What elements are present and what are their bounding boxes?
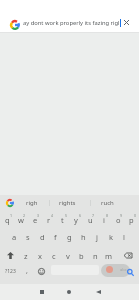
- button[interactable]: h: [76, 228, 90, 245]
- staticText: h: [81, 232, 86, 242]
- staticText: t: [61, 215, 64, 225]
- button[interactable]: x: [33, 247, 47, 264]
- button[interactable]: g: [62, 228, 76, 245]
- staticText: 4: [51, 213, 54, 218]
- button[interactable]: Backspace: [120, 247, 136, 264]
- button[interactable]: o: [111, 211, 125, 228]
- button[interactable]: i: [97, 211, 111, 228]
- staticText: g: [67, 232, 72, 242]
- button[interactable]: n: [88, 247, 102, 264]
- staticText: q: [5, 215, 10, 225]
- staticText: m: [105, 251, 113, 261]
- staticText: b: [79, 251, 84, 261]
- button[interactable]: y: [69, 211, 83, 228]
- button[interactable]: a: [7, 228, 21, 245]
- button[interactable]: rights: [49, 195, 85, 210]
- staticText: righ: [26, 199, 38, 207]
- button[interactable]: k: [104, 228, 118, 245]
- staticText: 5: [65, 213, 68, 218]
- staticText: ay dont work properly its fazing righ: [23, 19, 119, 27]
- button[interactable]: p: [124, 211, 138, 228]
- button[interactable]: j: [90, 228, 104, 245]
- button[interactable]: l: [117, 228, 131, 245]
- button[interactable]: Clear search: [119, 15, 133, 29]
- staticText: 2: [23, 213, 26, 218]
- staticText: d: [40, 232, 45, 242]
- staticText: c: [52, 251, 56, 261]
- staticText: f: [54, 232, 57, 242]
- button[interactable]: w: [14, 211, 28, 228]
- button[interactable]: q: [0, 211, 14, 228]
- button[interactable]: m: [102, 247, 116, 264]
- button[interactable]: e: [28, 211, 42, 228]
- staticText: i: [103, 215, 105, 225]
- button[interactable]: b: [74, 247, 88, 264]
- staticText: w: [18, 215, 24, 225]
- staticText: l: [123, 232, 125, 242]
- button[interactable]: u: [83, 211, 97, 228]
- staticText: rights: [59, 199, 76, 207]
- staticText: y: [74, 215, 78, 225]
- button[interactable]: ruch: [89, 195, 125, 210]
- staticText: v: [66, 251, 70, 261]
- button[interactable]: ?123: [2, 263, 18, 279]
- staticText: e: [33, 215, 38, 225]
- staticText: 7: [92, 213, 95, 218]
- button[interactable]: c: [47, 247, 61, 264]
- staticText: 8: [106, 213, 109, 218]
- staticText: z: [24, 251, 28, 261]
- button[interactable]: t: [55, 211, 69, 228]
- staticText: 9: [120, 213, 123, 218]
- button[interactable]: Search: [123, 266, 137, 278]
- staticText: ruch: [101, 199, 114, 207]
- staticText: j: [96, 232, 98, 242]
- button[interactable]: z: [19, 247, 33, 264]
- button[interactable]: Recent apps: [34, 284, 50, 300]
- staticText: n: [93, 251, 98, 261]
- staticText: 3: [37, 213, 40, 218]
- staticText: 6: [79, 213, 82, 218]
- button[interactable]: Shift: [3, 247, 18, 264]
- staticText: p: [129, 215, 134, 225]
- staticText: ,: [26, 266, 28, 276]
- button[interactable]: f: [48, 228, 62, 245]
- staticText: k: [109, 232, 114, 242]
- button[interactable]: ,: [21, 263, 33, 279]
- staticText: o: [116, 215, 121, 225]
- staticText: x: [38, 251, 42, 261]
- staticText: s: [26, 232, 30, 242]
- staticText: ?123: [5, 268, 16, 275]
- staticText: a: [12, 232, 17, 242]
- button[interactable]: s: [21, 228, 35, 245]
- button[interactable]: Back: [90, 284, 106, 300]
- button[interactable]: ay dont work properly its fazing righ: [23, 14, 119, 32]
- button[interactable]: v: [61, 247, 75, 264]
- staticText: u: [88, 215, 93, 225]
- staticText: r: [47, 215, 51, 225]
- button[interactable]: d: [35, 228, 49, 245]
- staticText: abc: [120, 267, 127, 272]
- button[interactable]: righ: [14, 195, 50, 210]
- staticText: 1: [10, 213, 13, 218]
- button[interactable]: Home: [61, 284, 77, 300]
- button[interactable]: Emoji: [35, 263, 47, 279]
- button[interactable]: r: [42, 211, 56, 228]
- staticText: 0: [134, 213, 137, 218]
